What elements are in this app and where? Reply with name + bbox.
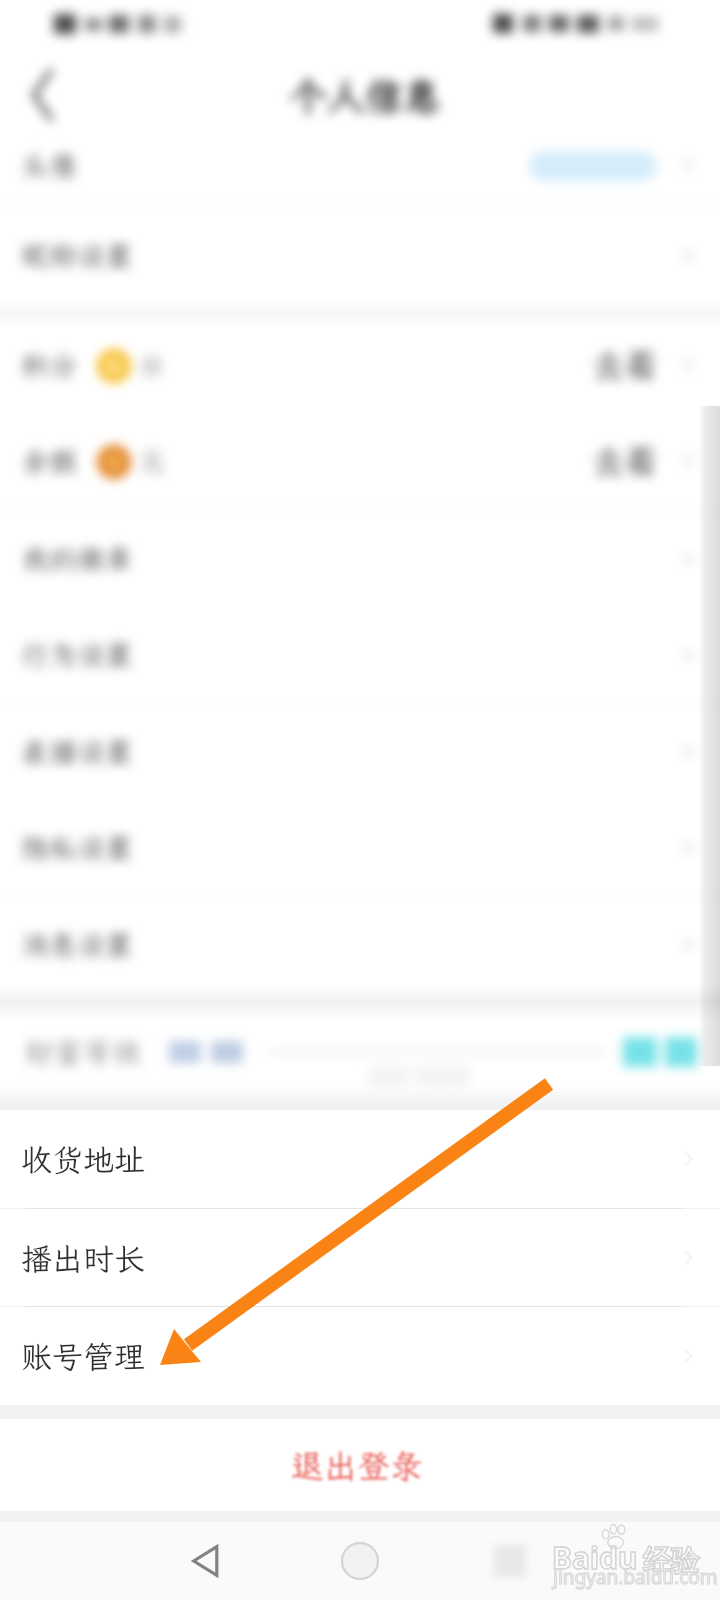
button[interactable] [0, 203, 720, 309]
button[interactable] [0, 800, 720, 896]
button[interactable]: Recents [465, 1522, 555, 1600]
button[interactable] [0, 130, 720, 202]
button[interactable] [0, 511, 720, 607]
button[interactable]: 元 [0, 414, 720, 510]
staticText: 去看 [593, 346, 657, 386]
button[interactable]: 分 [0, 318, 720, 414]
staticText: 分 [140, 351, 164, 381]
button[interactable]: ░░░ ░░░░ [0, 1011, 720, 1095]
staticText: 经验 [643, 1543, 699, 1578]
button[interactable] [0, 1209, 720, 1306]
button[interactable] [0, 607, 720, 703]
staticText: 去看 [593, 442, 657, 482]
button[interactable]: Back [161, 1522, 251, 1600]
button[interactable]: Home [315, 1522, 405, 1600]
button[interactable] [0, 1110, 720, 1208]
button[interactable] [0, 704, 720, 800]
button[interactable] [0, 897, 720, 993]
staticText: jingyan.baidu.com [553, 1564, 718, 1590]
button[interactable]: Back [18, 69, 70, 121]
button[interactable] [0, 1307, 720, 1405]
staticText: 元 [140, 447, 164, 477]
staticText: Bai [552, 1537, 599, 1578]
button[interactable] [0, 1419, 720, 1511]
staticText: du [599, 1537, 638, 1578]
